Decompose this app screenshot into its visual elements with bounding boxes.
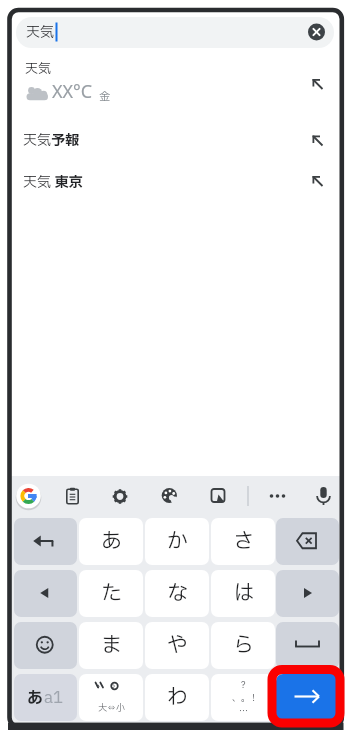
staticText: は (233, 578, 254, 609)
staticText: ま (101, 630, 122, 661)
button[interactable] (14, 570, 77, 617)
staticText: た (101, 578, 122, 609)
button[interactable] (263, 481, 293, 511)
button[interactable] (14, 622, 77, 669)
staticText: 天気予報 (23, 130, 79, 151)
button[interactable]: わ (145, 674, 209, 721)
staticText: 金 (99, 88, 110, 105)
button[interactable] (105, 481, 135, 511)
button[interactable] (276, 570, 339, 617)
button[interactable] (14, 481, 44, 511)
staticText: ら (233, 630, 254, 661)
button[interactable] (276, 674, 339, 721)
staticText: さ (233, 526, 254, 557)
staticText: あ (101, 526, 122, 557)
button[interactable]: は (211, 570, 275, 617)
staticText: ? (241, 678, 246, 691)
staticText: 天気 東京 (23, 172, 83, 193)
staticText: 大⇔小 (98, 701, 126, 714)
button[interactable]: 天気予報 (11, 120, 339, 160)
staticText: 天気 (25, 59, 52, 78)
button[interactable] (16, 17, 334, 48)
button[interactable]: ゛゜ (79, 674, 143, 721)
button[interactable] (58, 481, 88, 511)
staticText: a1 (44, 686, 64, 710)
button[interactable]: か (145, 518, 209, 565)
button[interactable]: ? (211, 674, 275, 721)
button[interactable] (154, 481, 184, 511)
button[interactable] (276, 518, 339, 565)
staticText: か (167, 526, 188, 557)
staticText: … (239, 704, 249, 717)
button[interactable]: あ (79, 518, 143, 565)
button[interactable] (276, 622, 339, 669)
button[interactable]: 天気 (11, 55, 339, 111)
staticText: XX°C (52, 79, 93, 104)
button[interactable]: ま (79, 622, 143, 669)
button[interactable]: ら (211, 622, 275, 669)
button[interactable]: な (145, 570, 209, 617)
staticText: な (167, 578, 188, 609)
staticText: 、。 ! (232, 691, 255, 704)
button[interactable]: 天気 東京 (11, 160, 339, 202)
button[interactable] (14, 518, 77, 565)
button[interactable] (203, 481, 233, 511)
staticText: わ (167, 682, 188, 713)
button[interactable]: た (79, 570, 143, 617)
button[interactable] (309, 481, 339, 511)
button[interactable]: や (145, 622, 209, 669)
staticText: 天気 (26, 22, 54, 43)
button[interactable]: さ (211, 518, 275, 565)
button[interactable]: あ (14, 674, 77, 721)
staticText: ゛゜ (96, 682, 127, 701)
staticText: あ (27, 686, 44, 710)
staticText: や (167, 630, 188, 661)
